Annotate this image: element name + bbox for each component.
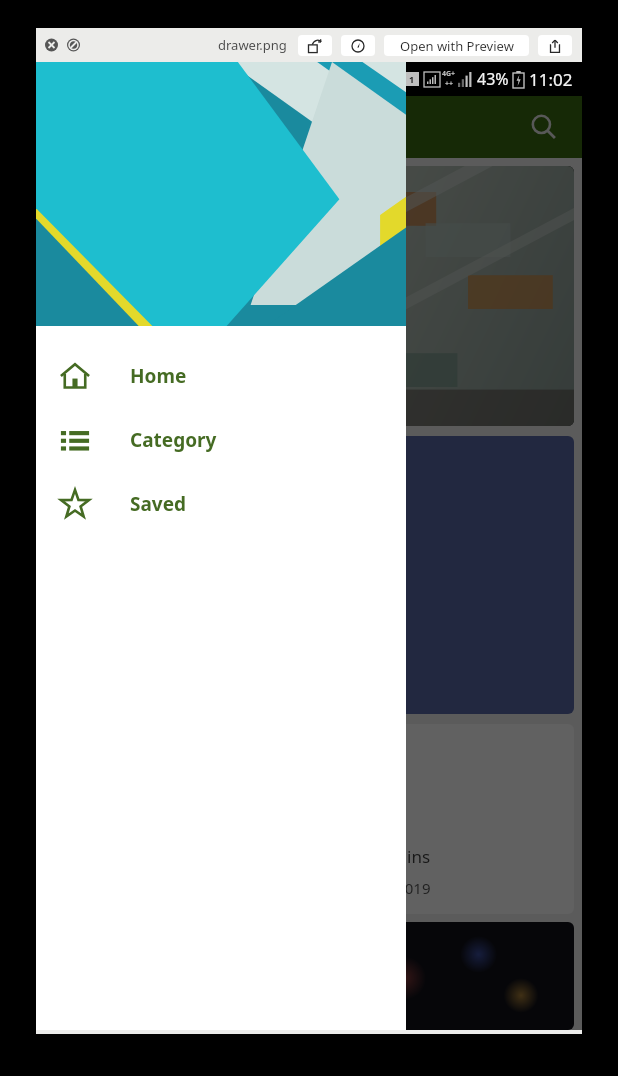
button[interactable]: Toolbar action [298, 35, 332, 56]
staticText: 4G+ [442, 69, 456, 79]
staticText: Saved [130, 491, 187, 517]
button[interactable]: Category [36, 408, 406, 472]
button[interactable]: Toolbar action [341, 35, 375, 56]
button[interactable]: Landing Page Performance [44, 724, 574, 914]
staticText: ++ [445, 79, 454, 89]
button[interactable]: Home [36, 344, 406, 408]
button[interactable]: Open with Preview [384, 35, 529, 56]
staticText: 43% [477, 68, 509, 90]
staticText: Supercharge your WordPress store with th… [60, 333, 338, 380]
staticText: LTE [388, 79, 400, 89]
staticText: 11:02 [529, 68, 573, 91]
staticText: Open with Preview [400, 37, 514, 55]
button[interactable]: Search [526, 109, 562, 145]
staticText: 1 [409, 73, 415, 85]
staticText: g Page [44, 504, 91, 534]
button[interactable]: Best WordPress Plugins [44, 166, 574, 426]
staticText: Best WordPress Plugins [60, 293, 328, 324]
button[interactable]: g Page [44, 436, 574, 714]
staticText: Category [130, 427, 217, 453]
staticText: Home [130, 363, 187, 389]
staticText: drawer.png [218, 36, 287, 54]
staticText: Loading speed of your website has never … [60, 821, 431, 868]
staticText: November 20, 2019 [293, 878, 431, 898]
button[interactable]: Saved [36, 472, 406, 536]
button[interactable] [44, 922, 574, 1030]
button[interactable]: Toolbar action [538, 35, 572, 56]
